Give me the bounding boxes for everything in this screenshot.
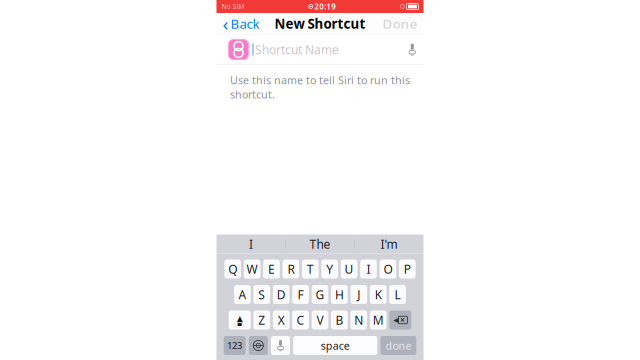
staticText: B [335, 312, 343, 328]
staticText: C [297, 312, 305, 328]
staticText: No SIM [221, 2, 244, 11]
staticText: ‹ [222, 11, 228, 36]
button[interactable]: Dictate [401, 34, 423, 64]
staticText: New Shortcut [274, 15, 365, 32]
button[interactable]: J [350, 285, 367, 304]
staticText: S [258, 286, 265, 302]
staticText: 20:19 [314, 1, 336, 12]
staticText: J [357, 286, 360, 302]
button[interactable]: Dictate [271, 336, 290, 355]
button[interactable]: Shift [229, 310, 251, 329]
staticText: A [238, 286, 246, 302]
staticText: E [268, 261, 275, 277]
button[interactable]: O [380, 259, 396, 278]
button[interactable]: X [273, 310, 289, 329]
button[interactable]: M [370, 310, 386, 329]
button[interactable]: N [350, 310, 367, 329]
button[interactable]: B [331, 310, 348, 329]
staticText: Q [228, 261, 237, 277]
staticText: Use this name to tell Siri to run this s… [230, 73, 410, 101]
button[interactable]: Q [224, 259, 241, 278]
staticText: Back [230, 15, 259, 32]
button[interactable]: Y [321, 259, 338, 278]
staticText: space [321, 338, 350, 353]
staticText: done [385, 338, 411, 353]
button[interactable]: L [389, 285, 406, 304]
staticText: T [307, 261, 314, 277]
button[interactable]: ‹ [216, 13, 265, 34]
button[interactable]: K [370, 285, 386, 304]
staticText: Done [382, 15, 417, 32]
staticText: L [395, 286, 401, 302]
button[interactable]: U [341, 259, 357, 278]
button[interactable]: R [283, 259, 299, 278]
button[interactable]: S [253, 285, 270, 304]
staticText: Y [326, 261, 333, 277]
staticText: V [316, 312, 323, 328]
button[interactable]: E [263, 259, 280, 278]
staticText: Z [258, 312, 265, 328]
button[interactable]: G [312, 285, 328, 304]
button[interactable]: Delete [389, 310, 411, 329]
staticText: N [354, 312, 363, 328]
staticText: × [400, 315, 405, 325]
staticText: Shortcut Name [255, 41, 339, 57]
staticText: R [287, 261, 294, 277]
staticText: ▲ [237, 314, 243, 323]
button[interactable]: T [302, 259, 319, 278]
staticText: O [383, 261, 392, 277]
button[interactable]: space [293, 336, 377, 355]
button[interactable]: 123 [224, 336, 246, 355]
staticText: P [404, 261, 411, 277]
staticText: 123 [227, 339, 242, 352]
staticText: I [366, 261, 370, 277]
staticText: ◀ [393, 316, 398, 324]
button[interactable]: done [380, 336, 416, 355]
button[interactable]: Next keyboard [249, 336, 268, 355]
staticText: K [375, 286, 382, 302]
button[interactable]: I [360, 259, 377, 278]
staticText: W [247, 261, 258, 277]
button[interactable]: A [234, 285, 251, 304]
staticText: G [315, 286, 324, 302]
button[interactable]: C [292, 310, 309, 329]
staticText: The [309, 236, 330, 252]
button[interactable]: I [216, 234, 285, 253]
staticText: X [278, 312, 285, 328]
button[interactable]: I'm [354, 234, 423, 253]
button[interactable]: P [399, 259, 416, 278]
staticText: U [345, 261, 354, 277]
button[interactable]: The [286, 234, 354, 253]
staticText: H [335, 286, 344, 302]
staticText: I'm [380, 236, 397, 252]
staticText: M [373, 312, 384, 328]
staticText: F [298, 286, 304, 302]
button[interactable]: W [244, 259, 260, 278]
button[interactable]: H [331, 285, 348, 304]
button[interactable]: Done [376, 13, 423, 34]
button[interactable]: Z [253, 310, 270, 329]
button[interactable]: F [292, 285, 309, 304]
staticText: D [277, 286, 286, 302]
button[interactable]: V [312, 310, 328, 329]
staticText: I [249, 236, 253, 252]
button[interactable]: D [273, 285, 289, 304]
